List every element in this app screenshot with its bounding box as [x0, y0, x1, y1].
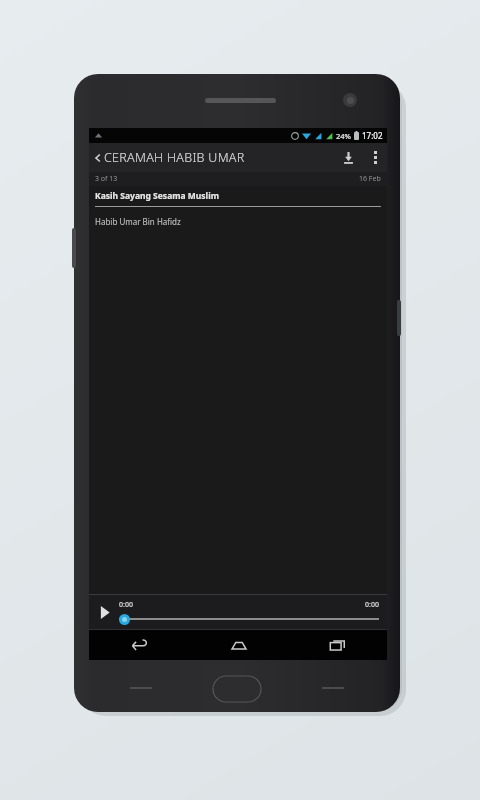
- staticText: 17:02: [362, 130, 383, 141]
- staticText: 3 of 13: [95, 174, 118, 184]
- button[interactable]: Kasih Sayang Sesama Muslim: [89, 186, 387, 233]
- staticText: 16 Feb: [359, 174, 381, 184]
- button[interactable]: Play: [89, 595, 119, 629]
- other: Back: [93, 153, 103, 163]
- button[interactable]: Back: [89, 143, 333, 172]
- button[interactable]: Back: [89, 630, 189, 660]
- staticText: Habib Umar Bin Hafidz: [95, 216, 181, 227]
- staticText: CERAMAH HABIB UMAR: [104, 149, 245, 166]
- staticText: 0:00: [119, 600, 133, 610]
- button[interactable]: Home: [189, 630, 288, 660]
- button[interactable]: Recent apps: [288, 630, 387, 660]
- staticText: Kasih Sayang Sesama Muslim: [95, 190, 219, 202]
- button[interactable]: [119, 613, 379, 625]
- button[interactable]: Download: [333, 143, 363, 172]
- button[interactable]: More options: [363, 143, 387, 172]
- staticText: 0:00: [365, 600, 379, 610]
- staticText: 24%: [336, 131, 351, 141]
